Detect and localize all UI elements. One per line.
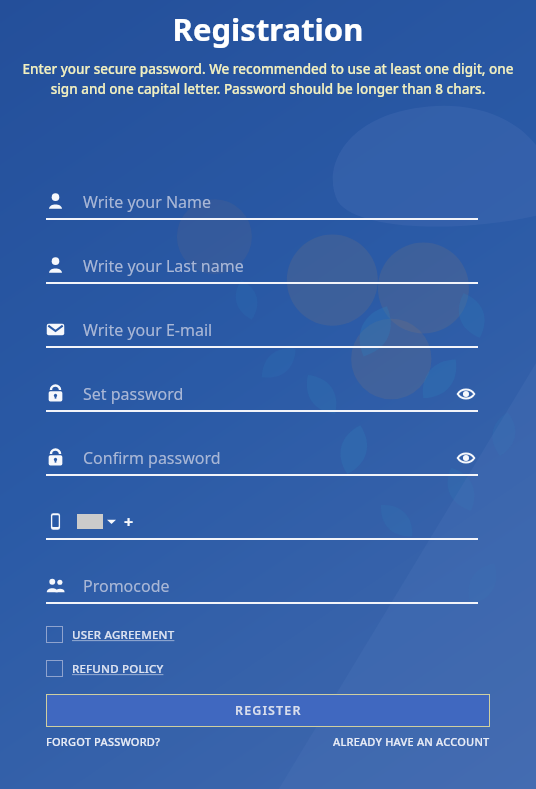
button[interactable]: Promocode xyxy=(46,573,478,604)
staticText: Write your Last name xyxy=(83,255,244,277)
staticText: Confirm password xyxy=(83,447,221,469)
button[interactable]: Set password xyxy=(46,381,478,412)
button[interactable]: ALREADY HAVE AN ACCOUNT xyxy=(333,734,490,749)
button[interactable]: Write your Last name xyxy=(46,253,478,284)
button[interactable]: USER AGREEMENT xyxy=(46,626,175,643)
staticText: Set password xyxy=(83,383,184,405)
button[interactable]: + xyxy=(46,509,478,540)
staticText: Registration xyxy=(0,8,536,50)
staticText: Write your Name xyxy=(83,191,212,213)
staticText: Write your E-mail xyxy=(83,319,213,341)
button[interactable]: REFUND POLICY xyxy=(46,660,164,677)
button[interactable]: Confirm password xyxy=(46,445,478,476)
staticText: ALREADY HAVE AN ACCOUNT xyxy=(333,734,490,749)
staticText: REGISTER xyxy=(235,702,302,719)
staticText: Promocode xyxy=(83,575,170,597)
staticText: + xyxy=(124,511,134,533)
staticText: USER AGREEMENT xyxy=(72,627,175,643)
button[interactable]: Write your Name xyxy=(46,189,478,220)
staticText: REFUND POLICY xyxy=(72,661,164,677)
button[interactable]: Show password xyxy=(454,382,478,406)
button[interactable]: Write your E-mail xyxy=(46,317,478,348)
staticText: Enter your secure password. We recommend… xyxy=(10,60,526,98)
button[interactable]: FORGOT PASSWORD? xyxy=(46,734,161,749)
button[interactable]: Show password xyxy=(454,446,478,470)
staticText: FORGOT PASSWORD? xyxy=(46,734,161,749)
button[interactable]: REGISTER xyxy=(46,694,490,727)
